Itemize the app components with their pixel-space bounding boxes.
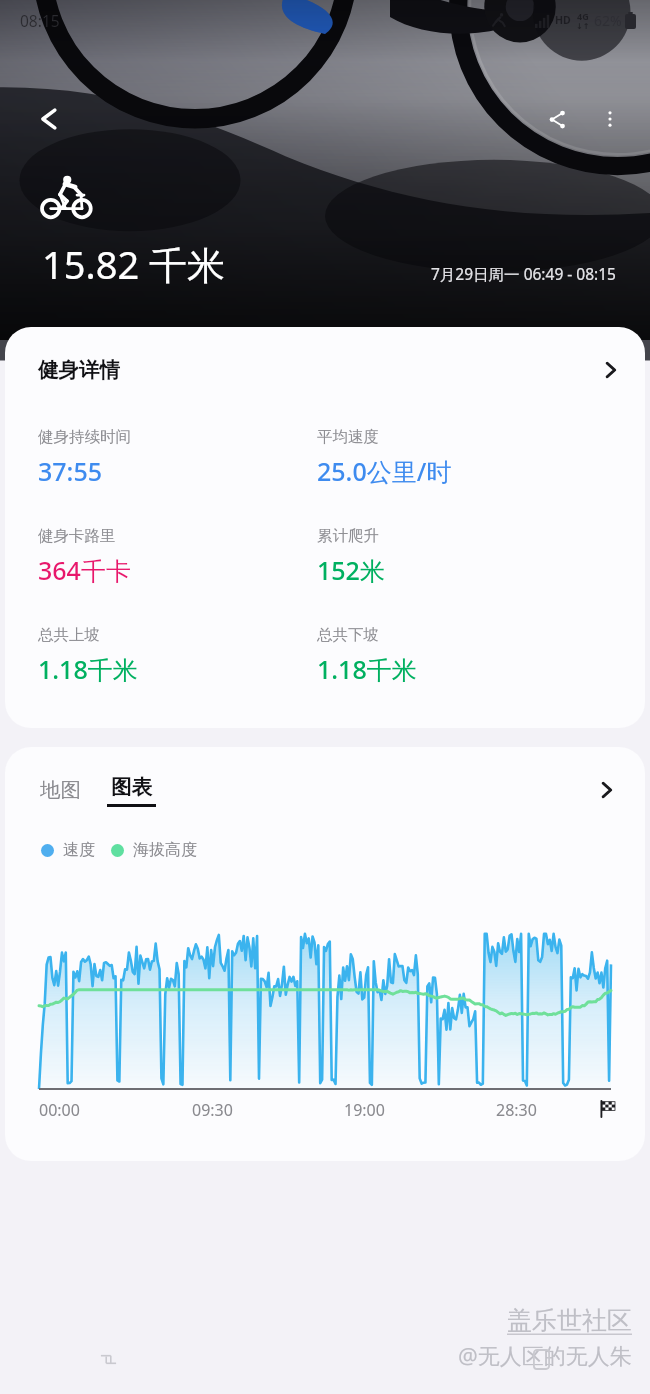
staticText: 1.18千米 xyxy=(38,652,138,686)
staticText: 平均速度 xyxy=(317,427,379,447)
button[interactable]: Share xyxy=(530,92,584,146)
staticText: 09:30 xyxy=(192,1099,233,1121)
button[interactable]: Open chart xyxy=(589,773,623,807)
button[interactable]: Back xyxy=(433,1324,650,1394)
staticText: 7月29日周一 06:49 - 08:15 xyxy=(431,263,616,284)
staticText: ↓↑ xyxy=(576,22,590,31)
staticText: 累计爬升 xyxy=(317,526,379,546)
staticText: 健身持续时间 xyxy=(38,427,131,447)
staticText: 364千卡 xyxy=(38,553,131,587)
staticText: 28:30 xyxy=(496,1099,537,1121)
button[interactable]: More options xyxy=(584,93,636,145)
staticText: 152米 xyxy=(317,553,385,587)
button[interactable]: Back xyxy=(22,93,74,145)
staticText: 图表 xyxy=(111,774,152,800)
staticText: 总共上坡 xyxy=(38,625,100,645)
staticText: 健身详情 xyxy=(38,357,120,383)
staticText: 37:55 xyxy=(38,454,103,488)
staticText: 1.18千米 xyxy=(317,652,417,686)
staticText: 健身卡路里 xyxy=(38,526,116,546)
staticText: 15.82 千米 xyxy=(42,238,226,290)
button[interactable]: 图表 xyxy=(107,774,156,807)
staticText: 海拔高度 xyxy=(133,840,197,860)
button[interactable]: 健身详情 xyxy=(5,327,645,413)
staticText: 00:00 xyxy=(39,1099,80,1121)
staticText: 25.0公里/时 xyxy=(317,454,452,488)
staticText: 盖乐世社区 xyxy=(507,1305,632,1336)
staticText: @无人区的无人朱 xyxy=(458,1340,632,1370)
staticText: 19:00 xyxy=(344,1099,385,1121)
staticText: HD xyxy=(555,13,571,27)
staticText: 4G xyxy=(577,10,589,22)
button[interactable]: 地图 xyxy=(38,773,83,807)
staticText: 地图 xyxy=(40,777,81,803)
staticText: 08:15 xyxy=(20,10,60,31)
staticText: 速度 xyxy=(63,840,95,860)
staticText: 总共下坡 xyxy=(317,625,379,645)
